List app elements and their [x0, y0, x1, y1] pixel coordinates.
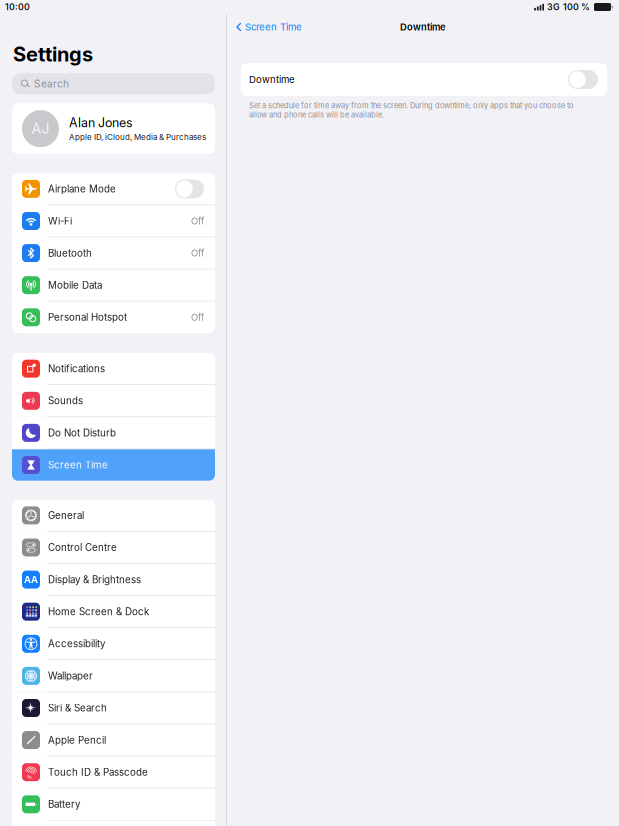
staticText: Accessibility — [48, 638, 105, 650]
staticText: Display & Brightness — [48, 574, 141, 585]
staticText: Screen Time — [245, 21, 302, 33]
button[interactable]: Do Not Disturb — [12, 417, 215, 449]
staticText: Battery — [48, 798, 80, 810]
staticText: AA — [24, 574, 38, 585]
staticText: Apple Pencil — [48, 734, 106, 746]
staticText: Settings — [13, 42, 93, 66]
staticText: Control Centre — [48, 542, 117, 553]
staticText: Home Screen & Dock — [48, 606, 149, 618]
staticText: AJ — [31, 120, 49, 137]
staticText: Sounds — [48, 395, 83, 407]
button[interactable]: Notifications — [12, 353, 215, 384]
button[interactable]: AJ — [12, 103, 215, 154]
staticText: 100 % — [563, 2, 590, 12]
button[interactable]: Mobile Data — [12, 269, 215, 301]
staticText: Downtime — [249, 74, 295, 85]
button[interactable]: AA — [12, 564, 215, 595]
staticText: Alan Jones — [69, 115, 133, 130]
staticText: Siri & Search — [48, 702, 107, 714]
button[interactable]: Wi-Fi — [12, 205, 215, 237]
button[interactable]: Home Screen & Dock — [12, 596, 215, 627]
button[interactable]: Wallpaper — [12, 660, 215, 692]
staticText: Personal Hotspot — [48, 311, 127, 323]
staticText: Off — [191, 215, 204, 227]
staticText: Mobile Data — [48, 279, 102, 291]
button[interactable]: General — [12, 500, 215, 531]
button[interactable]: Siri & Search — [12, 692, 215, 724]
button[interactable]: Personal Hotspot — [12, 302, 215, 333]
staticText: Search — [34, 78, 69, 90]
staticText: Wallpaper — [48, 670, 93, 682]
staticText: Set a schedule for time away from the sc… — [249, 101, 574, 119]
button[interactable]: Battery — [12, 789, 215, 820]
staticText: 3G — [547, 2, 560, 12]
staticText: Bluetooth — [48, 247, 92, 259]
staticText: Downtime — [400, 21, 446, 33]
staticText: Screen Time — [48, 459, 108, 471]
staticText: Off — [191, 247, 204, 259]
staticText: Touch ID & Passcode — [48, 766, 148, 778]
staticText: Apple ID, iCloud, Media & Purchases — [69, 132, 206, 142]
button[interactable]: Apple Pencil — [12, 724, 215, 756]
button[interactable]: Accessibility — [12, 628, 215, 659]
button[interactable]: Touch ID & Passcode — [12, 756, 215, 788]
button[interactable]: Screen Time — [12, 449, 215, 481]
staticText: General — [48, 509, 84, 521]
button[interactable]: Airplane Mode — [12, 173, 215, 205]
button[interactable]: Sounds — [12, 385, 215, 416]
staticText: Airplane Mode — [48, 183, 116, 195]
staticText: Do Not Disturb — [48, 427, 116, 439]
staticText: 10:00 — [5, 2, 30, 12]
button[interactable]: Control Centre — [12, 532, 215, 563]
button[interactable]: Bluetooth — [12, 237, 215, 269]
staticText: Wi-Fi — [48, 215, 72, 227]
staticText: Notifications — [48, 363, 105, 375]
staticText: Off — [191, 312, 204, 323]
button[interactable]: Screen Time — [227, 20, 302, 34]
